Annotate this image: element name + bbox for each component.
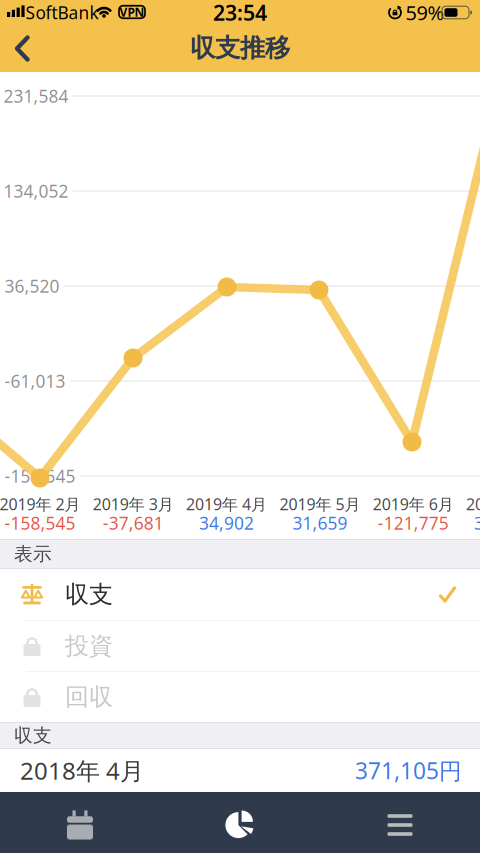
button[interactable]: 回収 xyxy=(0,672,480,722)
staticText: -61,013 xyxy=(4,369,65,392)
staticText: 2019年 6月 xyxy=(373,493,454,515)
staticText: 収支 xyxy=(65,580,113,609)
staticText: 投資 xyxy=(65,631,113,661)
staticText: 2019年 7月 xyxy=(466,493,480,515)
staticText: 回収 xyxy=(65,682,113,712)
staticText: 23:54 xyxy=(213,0,267,27)
button[interactable]: Charts xyxy=(160,792,320,853)
staticText: VPN xyxy=(119,4,144,20)
staticText: -158,545 xyxy=(4,511,75,534)
staticText: 134,052 xyxy=(3,179,68,202)
button[interactable]: 2018年 4月 xyxy=(0,749,480,792)
staticText: 34,902 xyxy=(199,511,254,534)
button[interactable]: Calendar xyxy=(0,792,160,853)
staticText: 31,659 xyxy=(292,511,347,534)
button[interactable]: Menu xyxy=(320,792,480,853)
staticText: 231,584 xyxy=(3,84,68,107)
staticText: 36,520 xyxy=(4,274,59,297)
staticText: 302,441 xyxy=(474,511,480,534)
staticText: 収支 xyxy=(14,724,52,747)
staticText: 2019年 4月 xyxy=(186,493,267,515)
button[interactable]: 投資 xyxy=(0,621,480,671)
button[interactable]: Back xyxy=(0,26,50,71)
staticText: 2019年 3月 xyxy=(93,493,174,515)
staticText: 59% xyxy=(405,0,444,26)
staticText: 2019年 5月 xyxy=(279,493,360,515)
staticText: 収支推移 xyxy=(190,32,290,63)
staticText: 371,105円 xyxy=(355,755,462,785)
staticText: 2018年 4月 xyxy=(20,755,144,786)
staticText: 表示 xyxy=(14,542,52,565)
staticText: -37,681 xyxy=(103,511,164,534)
staticText: 2019年 2月 xyxy=(0,493,80,515)
staticText: -158,545 xyxy=(4,464,75,487)
staticText: -121,775 xyxy=(378,511,449,534)
staticText: SoftBank xyxy=(25,1,98,24)
button[interactable]: 収支 xyxy=(0,569,480,620)
